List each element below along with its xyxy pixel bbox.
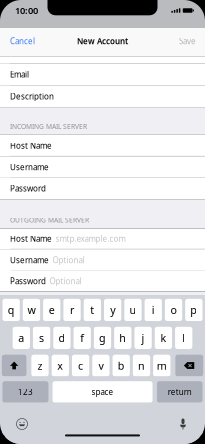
staticText: OUTGOING MAIL SERVER: [10, 215, 89, 224]
staticText: p: [190, 303, 197, 317]
button[interactable]: s: [33, 327, 50, 349]
button[interactable]: i: [145, 299, 162, 321]
staticText: u: [129, 303, 136, 317]
button[interactable]: y: [104, 299, 121, 321]
staticText: o: [170, 303, 176, 317]
staticText: l: [182, 331, 185, 345]
button[interactable]: Username: [0, 156, 205, 178]
button[interactable]: r: [63, 299, 81, 321]
staticText: t: [90, 303, 94, 317]
button[interactable]: j: [134, 327, 152, 349]
staticText: q: [8, 303, 15, 317]
staticText: space: [92, 387, 114, 397]
button[interactable]: f: [73, 327, 91, 349]
button[interactable]: Shift: [2, 355, 26, 376]
staticText: s: [39, 331, 44, 345]
button[interactable]: Email: [0, 63, 205, 86]
button[interactable]: a: [13, 327, 30, 349]
button[interactable]: g: [94, 327, 111, 349]
staticText: v: [98, 358, 103, 373]
staticText: New Account: [77, 36, 128, 46]
staticText: 10:00: [15, 4, 38, 17]
staticText: y: [110, 303, 115, 317]
staticText: w: [27, 303, 35, 317]
button[interactable]: Description: [0, 86, 205, 107]
staticText: Email: [10, 69, 29, 80]
staticText: a: [18, 331, 24, 345]
staticText: k: [160, 331, 166, 345]
staticText: 123: [18, 387, 33, 397]
button[interactable]: Delete: [175, 355, 203, 376]
button[interactable]: Host Name: [0, 135, 205, 156]
staticText: Optional: [50, 276, 82, 286]
staticText: Password: [10, 276, 46, 286]
staticText: d: [58, 331, 65, 345]
staticText: Description: [10, 91, 54, 102]
staticText: Password: [10, 183, 46, 194]
staticText: Save: [179, 36, 196, 46]
button[interactable]: Dictation: [175, 416, 191, 432]
staticText: Cancel: [10, 36, 35, 46]
button[interactable]: 123: [2, 381, 48, 403]
staticText: b: [118, 358, 125, 373]
button[interactable]: l: [175, 327, 192, 349]
button[interactable]: h: [114, 327, 131, 349]
staticText: Host Name: [10, 233, 52, 244]
button[interactable]: space: [53, 381, 153, 403]
button[interactable]: z: [31, 355, 49, 376]
button[interactable]: Emoji keyboard: [14, 416, 30, 432]
button[interactable]: c: [72, 355, 89, 376]
button[interactable]: t: [84, 299, 101, 321]
staticText: z: [37, 358, 42, 373]
staticText: j: [142, 331, 145, 345]
staticText: m: [157, 358, 167, 373]
staticText: i: [152, 303, 155, 317]
button[interactable]: e: [43, 299, 60, 321]
staticText: e: [49, 303, 55, 317]
button[interactable]: n: [133, 355, 150, 376]
staticText: r: [70, 303, 74, 317]
button[interactable]: u: [124, 299, 142, 321]
button[interactable]: v: [92, 355, 109, 376]
button[interactable]: q: [2, 299, 20, 321]
button[interactable]: d: [53, 327, 70, 349]
staticText: x: [57, 358, 63, 373]
button[interactable]: Host Name: [0, 228, 205, 249]
button[interactable]: Cancel: [0, 28, 35, 57]
button[interactable]: w: [23, 299, 40, 321]
button[interactable]: o: [165, 299, 182, 321]
button[interactable]: b: [112, 355, 130, 376]
button[interactable]: Username: [0, 249, 205, 271]
staticText: Host Name: [10, 140, 52, 151]
staticText: g: [99, 331, 106, 345]
staticText: h: [119, 331, 126, 345]
staticText: Username: [10, 255, 49, 265]
staticText: Optional: [53, 255, 85, 265]
button[interactable]: Password: [0, 178, 205, 199]
button[interactable]: Password: [0, 271, 205, 291]
button[interactable]: x: [52, 355, 69, 376]
staticText: n: [138, 358, 145, 373]
staticText: f: [80, 331, 84, 345]
staticText: INCOMING MAIL SERVER: [10, 122, 87, 131]
button[interactable]: Save: [179, 28, 205, 57]
button[interactable]: return: [157, 381, 202, 403]
button[interactable]: p: [185, 299, 202, 321]
button[interactable]: k: [155, 327, 172, 349]
staticText: return: [168, 387, 192, 397]
staticText: Username: [10, 162, 49, 172]
button[interactable]: m: [153, 355, 170, 376]
staticText: c: [78, 358, 83, 373]
staticText: smtp.example.com: [56, 233, 126, 244]
